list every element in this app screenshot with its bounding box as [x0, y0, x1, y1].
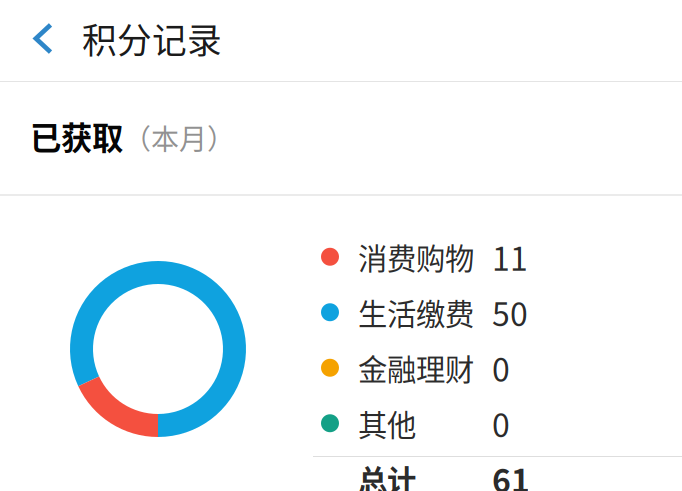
staticText: 生活缴费	[358, 291, 474, 333]
staticText: 11	[492, 234, 528, 280]
staticText: 其他	[358, 402, 416, 444]
button[interactable]: Back	[17, 5, 69, 71]
staticText: 金融理财	[358, 346, 474, 389]
staticText: 已获取	[30, 113, 123, 159]
staticText: 50	[492, 289, 528, 335]
staticText: 0	[492, 345, 510, 391]
staticText: 积分记录	[82, 13, 222, 64]
staticText: 61	[492, 456, 530, 491]
staticText: 消费购物	[358, 235, 474, 278]
staticText: （本月）	[123, 117, 235, 158]
staticText: 0	[492, 400, 510, 446]
staticText: 总计	[358, 457, 416, 491]
